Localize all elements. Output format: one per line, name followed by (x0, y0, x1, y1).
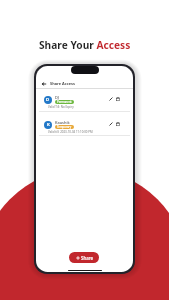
button[interactable]: Back (39, 79, 48, 88)
staticText: Valid Till: No Expiry (48, 105, 74, 109)
button[interactable]: Edit (107, 95, 115, 103)
staticText: K (47, 122, 50, 128)
button[interactable]: K (36, 112, 133, 135)
button[interactable]: Delete (114, 120, 122, 128)
button[interactable]: Edit (107, 120, 115, 128)
staticText: Share (81, 255, 93, 261)
button[interactable]: Share (69, 252, 99, 263)
staticText: Permanent (57, 100, 72, 104)
staticText: DJ (55, 95, 59, 100)
staticText: Share Access (50, 81, 75, 86)
staticText: Kaushik (55, 120, 70, 125)
staticText: Share Your Access (39, 38, 131, 52)
button[interactable]: D (36, 87, 133, 111)
staticText: D (46, 97, 50, 103)
staticText: Temporary (57, 125, 72, 129)
button[interactable]: Delete (114, 95, 122, 103)
staticText: Valid till: 2023-10-04 11:10:00 PM (48, 130, 93, 134)
